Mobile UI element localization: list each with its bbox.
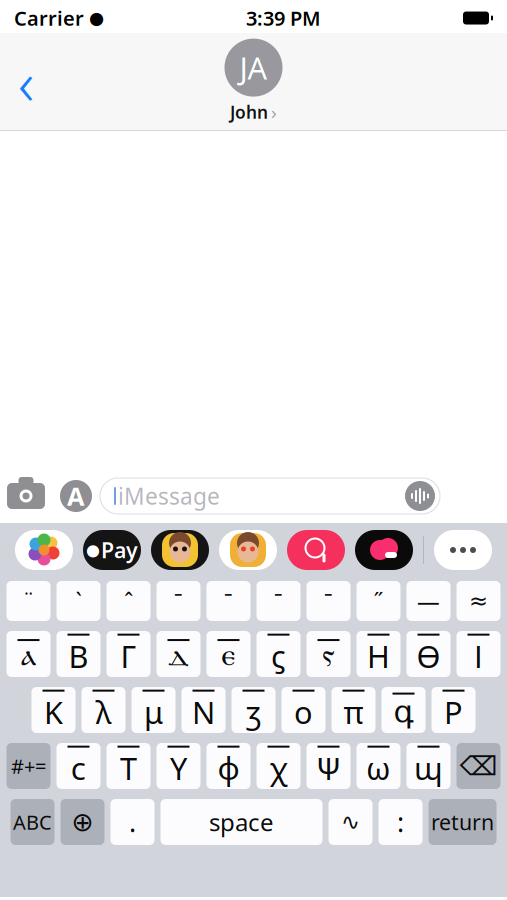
button[interactable]: ⲋ bbox=[306, 631, 350, 677]
staticText: ● bbox=[89, 8, 104, 28]
button[interactable]: Apple Pay bbox=[83, 530, 141, 570]
staticText: ɰ bbox=[414, 748, 443, 788]
staticText: ⊕ bbox=[71, 807, 93, 837]
button[interactable]: ABC bbox=[10, 799, 54, 845]
button[interactable]: В bbox=[56, 631, 100, 677]
button[interactable]: χ bbox=[256, 743, 300, 789]
staticText: ˉ bbox=[174, 586, 183, 616]
button[interactable]: ˆ bbox=[106, 581, 150, 621]
staticText: A bbox=[67, 479, 85, 513]
staticText: iMessage bbox=[118, 481, 220, 511]
button[interactable]: Next keyboard bbox=[60, 799, 104, 845]
staticText: В bbox=[68, 636, 88, 676]
staticText: JA bbox=[239, 47, 267, 88]
button[interactable]: Τ bbox=[106, 743, 150, 789]
staticText: space bbox=[209, 806, 274, 838]
button[interactable]: More bbox=[434, 530, 492, 570]
button[interactable]: Н bbox=[356, 631, 400, 677]
button[interactable]: ϕ bbox=[206, 743, 250, 789]
button[interactable]: space bbox=[160, 799, 322, 845]
button[interactable]: Camera bbox=[0, 472, 52, 520]
button[interactable]: ∿ bbox=[328, 799, 372, 845]
button[interactable]: ӡ bbox=[231, 687, 275, 733]
staticText: ⲉ bbox=[221, 641, 235, 671]
button[interactable]: ⲁ bbox=[6, 631, 50, 677]
staticText: ӡ bbox=[246, 692, 261, 732]
button[interactable]: ¨ bbox=[6, 581, 50, 621]
staticText: ϕ bbox=[217, 748, 239, 788]
button[interactable]: return bbox=[428, 799, 496, 845]
button[interactable]: Apps bbox=[52, 472, 100, 520]
button[interactable]: І bbox=[456, 631, 500, 677]
staticText: Н bbox=[367, 636, 390, 676]
button[interactable]: Back bbox=[0, 51, 52, 111]
button[interactable]: ⲉ bbox=[206, 631, 250, 677]
button[interactable]: Digital Touch bbox=[355, 530, 413, 570]
staticText: ο bbox=[294, 692, 313, 732]
staticText: — bbox=[417, 586, 440, 616]
staticText: Ψ bbox=[316, 748, 341, 788]
staticText: Pay bbox=[101, 536, 138, 564]
staticText: ˉ bbox=[224, 586, 233, 616]
staticText: գ bbox=[393, 695, 413, 729]
button[interactable]: ˋ bbox=[56, 581, 100, 621]
staticText: Τ bbox=[120, 748, 137, 788]
button[interactable]: λ bbox=[81, 687, 125, 733]
button[interactable]: Κ bbox=[31, 687, 75, 733]
staticText: › bbox=[271, 100, 277, 124]
button[interactable]: Image Search bbox=[287, 530, 345, 570]
staticText: ⲁ bbox=[21, 641, 36, 671]
staticText: return bbox=[431, 808, 494, 836]
button[interactable]: Ψ bbox=[306, 743, 350, 789]
staticText: #+= bbox=[11, 753, 46, 779]
button[interactable]: ˉ bbox=[206, 581, 250, 621]
staticText: ⲇ bbox=[168, 641, 189, 671]
staticText: Κ bbox=[44, 692, 63, 732]
button[interactable]: ≈ bbox=[456, 581, 500, 621]
staticText: с bbox=[71, 748, 86, 788]
button[interactable]: ω bbox=[356, 743, 400, 789]
button[interactable]: ɰ bbox=[406, 743, 450, 789]
staticText: Ө bbox=[416, 636, 440, 676]
staticText: ˉ bbox=[324, 586, 333, 616]
button[interactable]: π bbox=[331, 687, 375, 733]
staticText: ω bbox=[366, 748, 391, 788]
button[interactable]: #+= bbox=[6, 743, 50, 789]
button[interactable]: գ bbox=[381, 687, 425, 733]
staticText: Р bbox=[444, 692, 463, 732]
button[interactable]: iMessage bbox=[100, 478, 440, 514]
button[interactable]: Ν bbox=[181, 687, 225, 733]
staticText: Г bbox=[120, 636, 136, 676]
button[interactable]: Г bbox=[106, 631, 150, 677]
staticText: ⲋ bbox=[322, 641, 334, 671]
staticText: ∿ bbox=[341, 809, 360, 835]
staticText: ¨ bbox=[22, 586, 35, 616]
button[interactable]: Photos bbox=[15, 530, 73, 570]
button[interactable]: : bbox=[378, 799, 422, 845]
button[interactable]: ˝ bbox=[356, 581, 400, 621]
button[interactable]: с bbox=[56, 743, 100, 789]
button[interactable]: ⲇ bbox=[156, 631, 200, 677]
staticText: ABC bbox=[13, 809, 52, 835]
staticText: John bbox=[230, 100, 268, 123]
staticText: Ү bbox=[170, 748, 187, 788]
button[interactable]: Ү bbox=[156, 743, 200, 789]
button[interactable]: ˉ bbox=[156, 581, 200, 621]
button[interactable]: ϛ bbox=[256, 631, 300, 677]
button[interactable]: — bbox=[406, 581, 450, 621]
button[interactable]: Animoji bbox=[219, 530, 277, 570]
button[interactable]: ˉ bbox=[306, 581, 350, 621]
button[interactable]: Ө bbox=[406, 631, 450, 677]
button[interactable]: . bbox=[110, 799, 154, 845]
staticText: ⌫ bbox=[459, 751, 497, 781]
button[interactable]: JA bbox=[193, 36, 313, 126]
staticText: ≈ bbox=[469, 588, 488, 614]
button[interactable]: Delete bbox=[456, 743, 500, 789]
staticText: І bbox=[474, 636, 483, 676]
button[interactable]: ο bbox=[281, 687, 325, 733]
button[interactable]: μ bbox=[131, 687, 175, 733]
button[interactable]: ˉ bbox=[256, 581, 300, 621]
staticText: 3:39 PM bbox=[246, 5, 321, 31]
button[interactable]: Memoji Stickers bbox=[151, 530, 209, 570]
button[interactable]: Р bbox=[431, 687, 475, 733]
